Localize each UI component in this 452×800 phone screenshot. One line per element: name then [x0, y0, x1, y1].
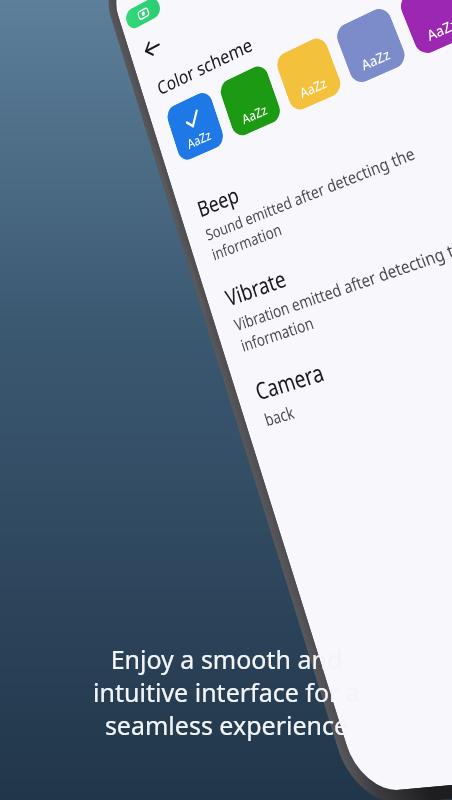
- staticText: Color scheme: [154, 31, 256, 101]
- button[interactable]: Camera: [230, 242, 452, 447]
- button[interactable]: Color option: [333, 4, 409, 86]
- staticText: AaZz: [185, 126, 213, 153]
- staticText: AaZz: [297, 73, 329, 102]
- button[interactable]: Color option: [164, 89, 226, 163]
- button[interactable]: Color option: [397, 0, 452, 57]
- staticText: back: [261, 401, 297, 431]
- staticText: Camera: [251, 356, 328, 408]
- staticText: AaZz: [424, 13, 452, 45]
- button[interactable]: Vibrate: [201, 136, 452, 372]
- staticText: AaZz: [239, 100, 270, 128]
- staticText: Beep: [194, 180, 243, 224]
- staticText: Enjoy a smooth and intuitive interface f…: [93, 642, 360, 742]
- button[interactable]: Back: [130, 19, 176, 76]
- staticText: AaZz: [358, 44, 393, 75]
- staticText: Vibrate: [222, 263, 290, 314]
- staticText: Vibration emitted after detecting the in…: [231, 211, 452, 356]
- button[interactable]: Beep: [174, 36, 452, 281]
- button[interactable]: Color option: [217, 63, 283, 139]
- button[interactable]: Color option: [274, 34, 344, 113]
- staticText: Sound emitted after detecting the inform…: [203, 111, 452, 265]
